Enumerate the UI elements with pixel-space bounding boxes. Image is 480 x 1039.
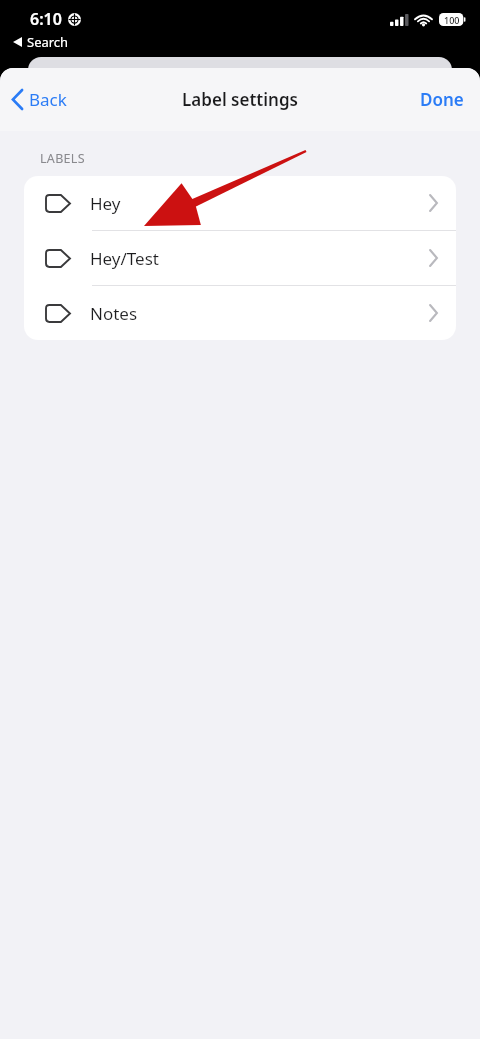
staticText: LABELS [40, 150, 85, 167]
staticText: Notes [90, 302, 429, 325]
staticText: 100 [444, 14, 460, 26]
staticText: 6:10 [30, 8, 62, 30]
staticText: Hey [90, 192, 429, 215]
staticText: Done [420, 88, 464, 111]
button[interactable]: Hey [24, 176, 456, 231]
button[interactable]: Done [404, 80, 480, 119]
staticText: Back [29, 88, 67, 111]
staticText: Search [27, 33, 69, 51]
staticText: Hey/Test [90, 247, 429, 270]
button[interactable]: Notes [24, 286, 456, 340]
staticText: Label settings [182, 88, 298, 111]
button[interactable]: Hey/Test [24, 231, 456, 286]
button[interactable]: Back [0, 82, 79, 117]
